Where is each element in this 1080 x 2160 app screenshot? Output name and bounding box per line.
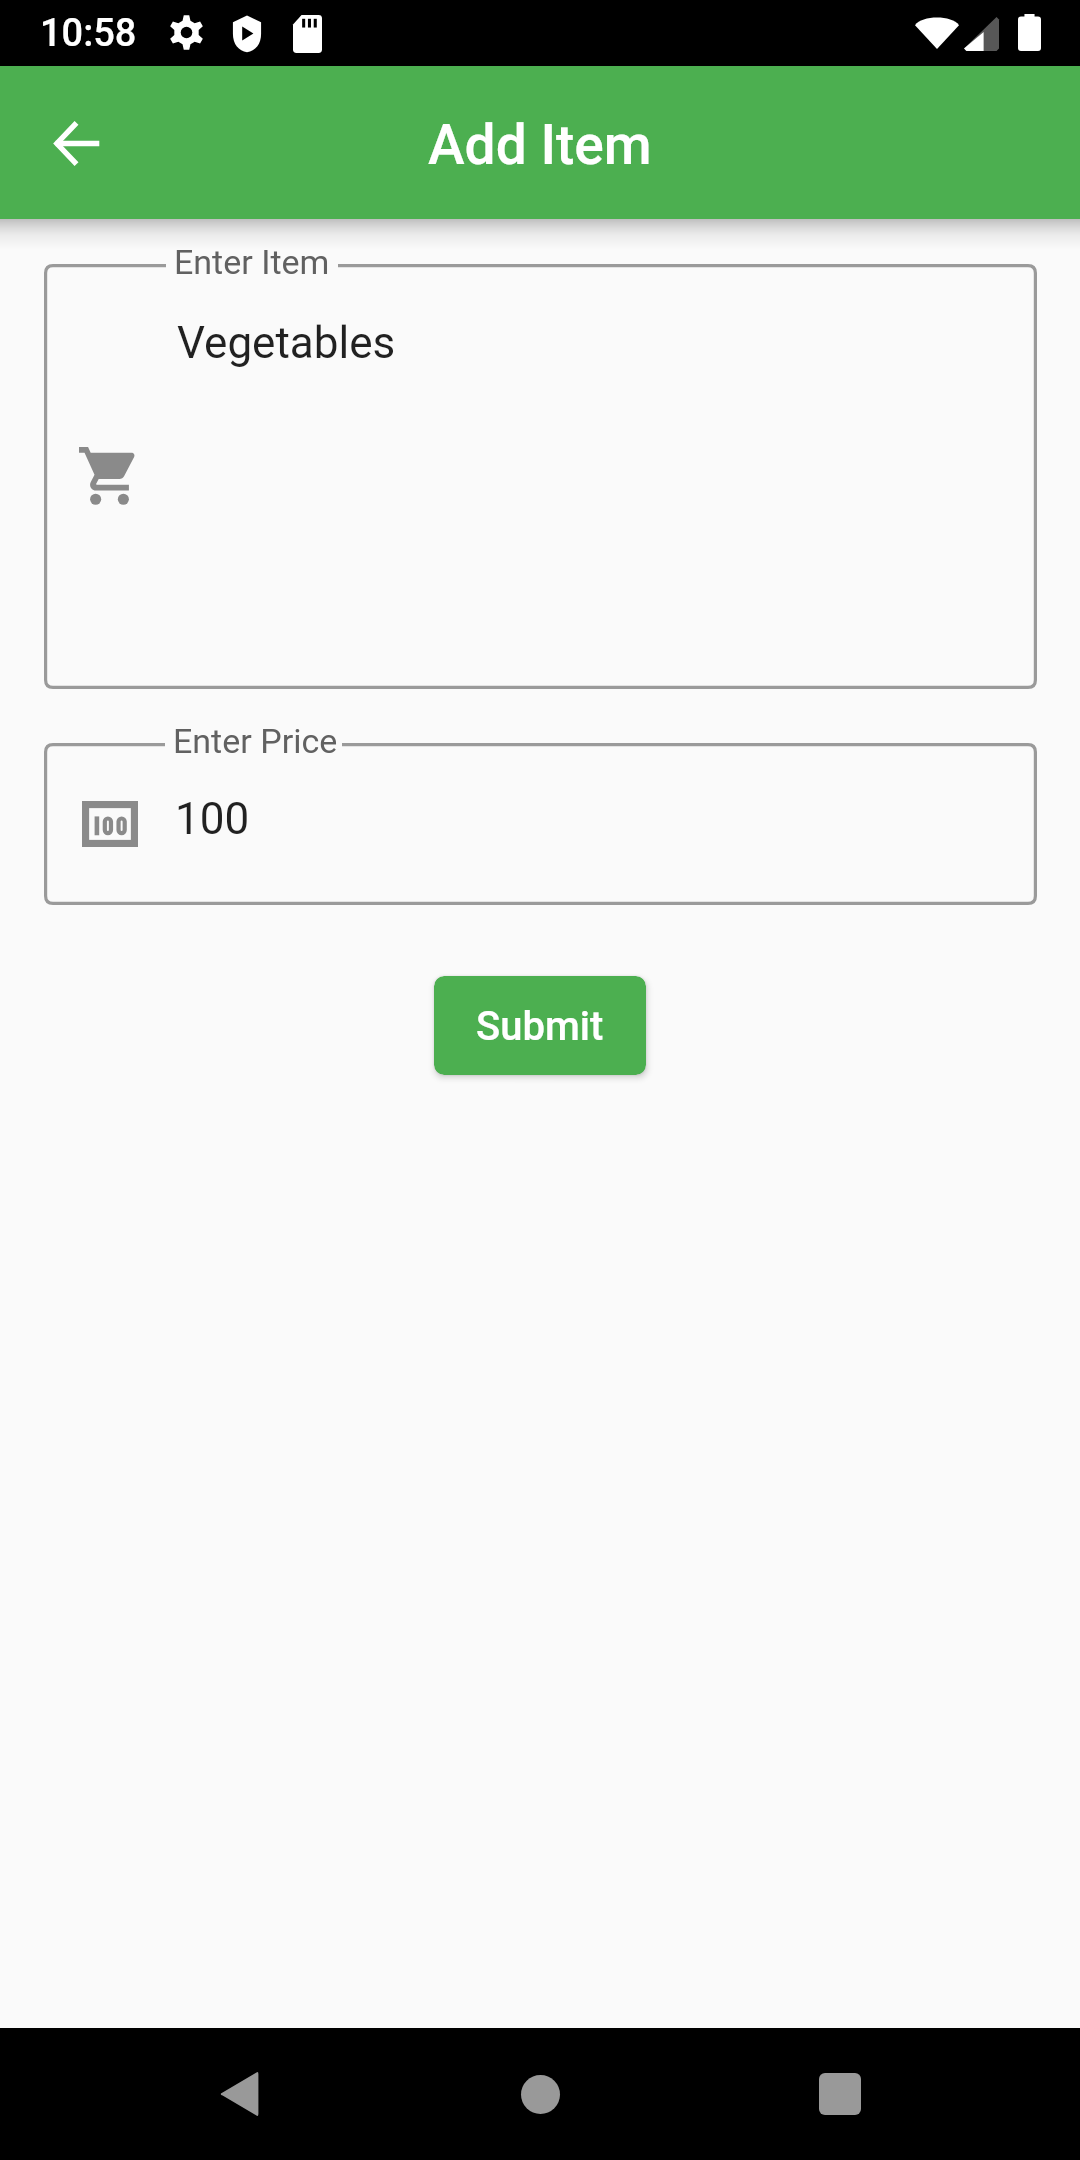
- staticText: 10:58: [40, 11, 137, 56]
- staticText: Submit: [476, 1003, 604, 1050]
- button[interactable]: 100: [44, 743, 1037, 905]
- staticText: Vegetables: [177, 317, 396, 369]
- button[interactable]: Home: [480, 2034, 600, 2154]
- staticText: Enter Item: [174, 242, 330, 282]
- button[interactable]: Back: [180, 2034, 300, 2154]
- button[interactable]: Vegetables: [44, 264, 1037, 689]
- button[interactable]: Recent apps: [780, 2034, 900, 2154]
- button[interactable]: Back: [29, 95, 125, 191]
- staticText: 100: [175, 793, 250, 845]
- staticText: Add Item: [428, 113, 652, 177]
- button[interactable]: Submit: [434, 976, 646, 1075]
- staticText: Enter Price: [173, 721, 338, 761]
